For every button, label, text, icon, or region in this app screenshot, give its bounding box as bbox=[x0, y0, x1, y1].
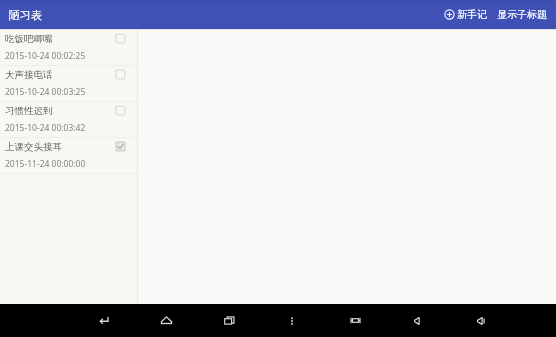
button[interactable]: Volume up bbox=[466, 304, 496, 337]
staticText: 新手记 bbox=[457, 8, 487, 21]
button[interactable]: 陋习表 bbox=[9, 8, 42, 22]
other: 新手记 bbox=[444, 9, 455, 20]
button[interactable]: 未完成 bbox=[115, 33, 126, 44]
button[interactable]: 习惯性迟到 bbox=[0, 102, 137, 138]
staticText: 2015-11-24 00:00:00 bbox=[5, 158, 86, 170]
button[interactable]: Recents bbox=[214, 304, 244, 337]
staticText: 习惯性迟到 bbox=[5, 105, 115, 117]
button[interactable]: 大声接电话 bbox=[0, 66, 137, 102]
staticText: 显示子标题 bbox=[497, 8, 547, 21]
staticText: 吃饭吧唧嘴 bbox=[5, 33, 115, 45]
staticText: 2015-10-24 00:03:25 bbox=[5, 86, 86, 98]
button[interactable]: More options bbox=[277, 304, 307, 337]
button[interactable]: 上课交头接耳 bbox=[0, 138, 137, 174]
button[interactable]: 显示子标题 bbox=[495, 5, 549, 24]
staticText: 2015-10-24 00:03:42 bbox=[5, 122, 86, 134]
staticText: 2015-10-24 00:02:25 bbox=[5, 50, 86, 62]
button[interactable]: Back bbox=[88, 304, 118, 337]
button[interactable]: 未完成 bbox=[115, 69, 126, 80]
staticText: 大声接电话 bbox=[5, 69, 115, 81]
staticText: 上课交头接耳 bbox=[5, 141, 115, 153]
button[interactable]: 已完成 bbox=[115, 141, 126, 152]
button[interactable]: 未完成 bbox=[115, 105, 126, 116]
button[interactable]: Screenshot bbox=[340, 304, 370, 337]
button[interactable]: Home bbox=[151, 304, 181, 337]
button[interactable]: Volume down bbox=[403, 304, 433, 337]
button[interactable]: 吃饭吧唧嘴 bbox=[0, 30, 137, 66]
button[interactable]: 新手记 bbox=[442, 5, 489, 24]
